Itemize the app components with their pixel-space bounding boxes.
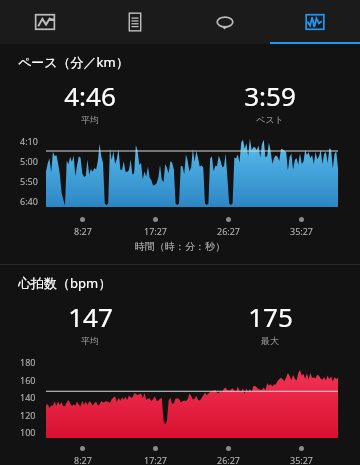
staticText: 3:59 [244,78,296,113]
staticText: 17:27 [144,454,168,465]
staticText: 26:27 [217,225,241,237]
staticText: 100 [20,426,36,438]
staticText: 8:27 [74,454,92,465]
button[interactable]: 心拍数（bpm） [0,265,360,465]
staticText: 120 [20,409,36,421]
staticText: 4:10 [20,135,38,147]
staticText: 180 [20,356,36,368]
button[interactable]: Charts [270,0,360,44]
staticText: 最大 [261,335,279,346]
staticText: 平均 [81,114,99,125]
staticText: 4:46 [64,78,116,113]
button[interactable]: Details [90,0,180,44]
staticText: 35:27 [290,225,314,237]
staticText: 5:50 [20,175,38,187]
staticText: ベスト [256,114,284,125]
staticText: 140 [20,391,36,403]
staticText: 175 [248,299,293,334]
button[interactable]: Laps [180,0,270,44]
staticText: 時間（時：分：秒） [135,240,225,253]
staticText: 平均 [81,335,99,346]
staticText: 35:27 [290,454,314,465]
staticText: 17:27 [144,225,168,237]
button[interactable]: ペース（分／km） [0,44,360,264]
staticText: 心拍数（bpm） [18,274,112,292]
staticText: ペース（分／km） [18,53,129,71]
staticText: 6:40 [20,195,38,207]
staticText: 26:27 [217,454,241,465]
staticText: 5:00 [20,155,38,167]
staticText: 8:27 [74,225,92,237]
staticText: 147 [68,299,113,334]
staticText: 160 [20,374,36,386]
button[interactable]: Map [0,0,90,44]
